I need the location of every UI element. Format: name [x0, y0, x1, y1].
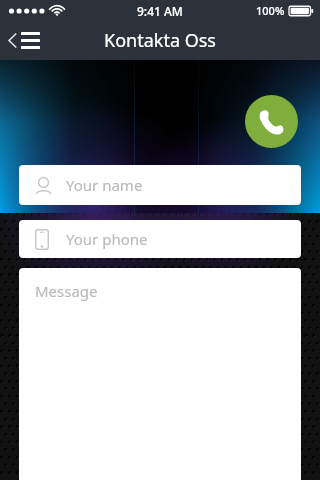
staticText: Kontakta Oss [104, 28, 216, 53]
button[interactable]: Message [19, 268, 301, 480]
staticText: Your phone [66, 229, 148, 249]
button[interactable]: Your name [19, 165, 301, 205]
staticText: 100% [256, 3, 285, 18]
staticText: Your name [66, 175, 143, 195]
button[interactable]: Menu [0, 26, 50, 55]
button[interactable]: Call [245, 95, 298, 148]
staticText: 9:41 AM [137, 3, 183, 19]
button[interactable]: Your phone [19, 220, 301, 258]
staticText: Message [35, 281, 98, 301]
